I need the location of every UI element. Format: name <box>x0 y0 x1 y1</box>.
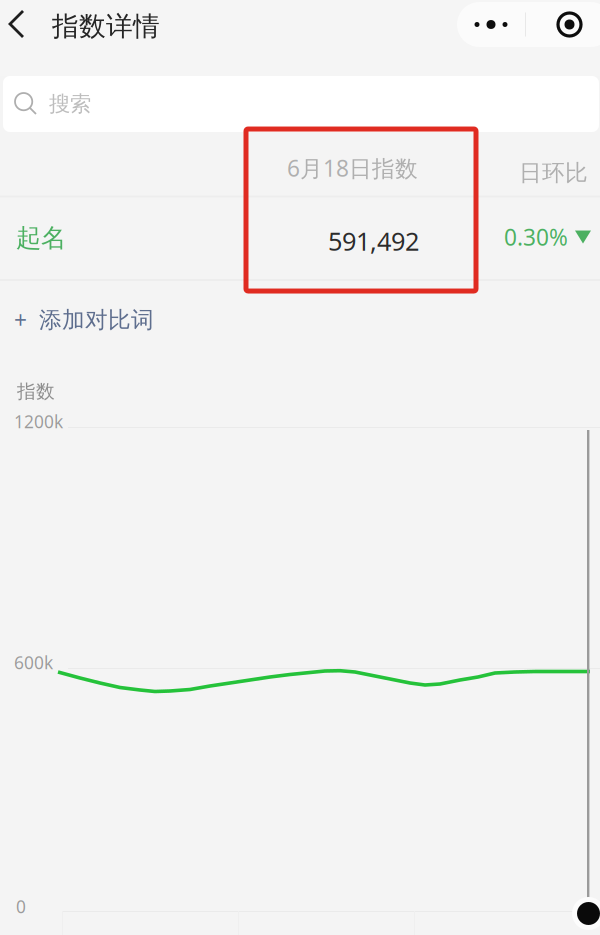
staticText: 6月18日指数 <box>287 153 418 183</box>
button[interactable]: + <box>0 293 300 347</box>
staticText: 0.30% <box>504 222 568 252</box>
staticText: 搜索 <box>49 91 91 117</box>
staticText: 600k <box>14 651 53 674</box>
button[interactable]: 搜索 <box>0 76 600 132</box>
staticText: 指数详情 <box>52 10 160 43</box>
button[interactable]: Close <box>526 2 600 47</box>
button[interactable]: More <box>457 2 525 47</box>
staticText: 日环比 <box>519 159 588 187</box>
button[interactable]: 起名 <box>0 196 216 280</box>
staticText: 1200k <box>14 410 63 433</box>
staticText: 591,492 <box>328 224 419 258</box>
staticText: 起名 <box>16 222 66 253</box>
button[interactable]: Back <box>0 0 42 48</box>
staticText: + <box>14 305 27 335</box>
staticText: 指数 <box>17 380 55 403</box>
staticText: 添加对比词 <box>39 306 154 334</box>
staticText: 0 <box>16 895 26 918</box>
